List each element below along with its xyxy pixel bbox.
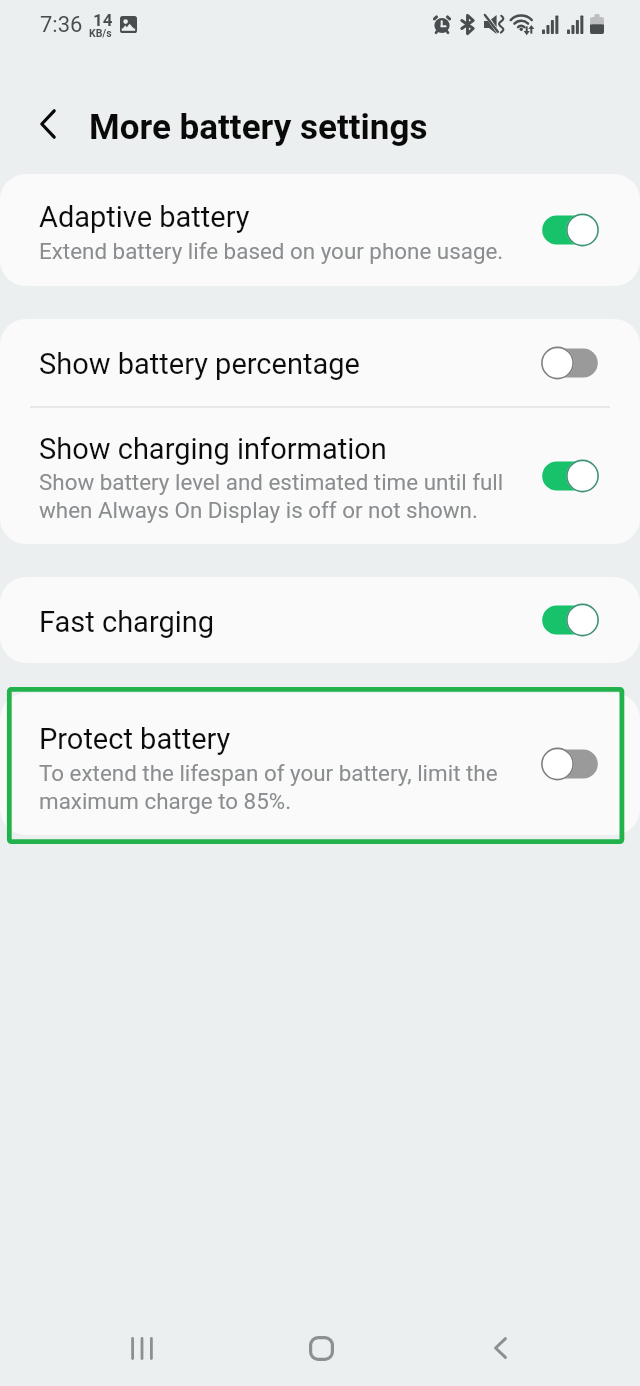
staticText: Adaptive battery [39,200,250,234]
staticText: 14 [93,10,113,30]
button[interactable]: Show battery percentage [0,319,640,406]
staticText: To extend the lifespan of your battery, … [39,760,498,814]
button[interactable]: Navigate up [20,96,76,152]
button[interactable]: Enabled toggle [534,454,606,498]
staticText: Protect battery [39,722,231,756]
staticText: 7:36 [40,12,83,38]
button[interactable]: Disabled toggle [534,341,606,385]
button[interactable]: Disabled toggle [534,742,606,786]
staticText: Show battery level and estimated time un… [39,469,504,523]
button[interactable]: Enabled toggle [534,208,606,252]
staticText: Fast charging [39,605,215,639]
button[interactable]: Protect battery [0,693,640,835]
button[interactable]: Show charging information [0,408,640,544]
button[interactable]: Recent apps [99,1305,185,1386]
staticText: Show charging information [39,432,387,466]
button[interactable]: Back [457,1305,543,1386]
staticText: Extend battery life based on your phone … [39,238,504,264]
button[interactable]: Enabled toggle [534,598,606,642]
button[interactable]: Fast charging [0,577,640,663]
staticText: KB/s [89,27,112,39]
staticText: More battery settings [89,107,428,148]
staticText: Show battery percentage [39,347,360,381]
button[interactable]: Home [278,1305,364,1386]
button[interactable]: Adaptive battery [0,174,640,286]
